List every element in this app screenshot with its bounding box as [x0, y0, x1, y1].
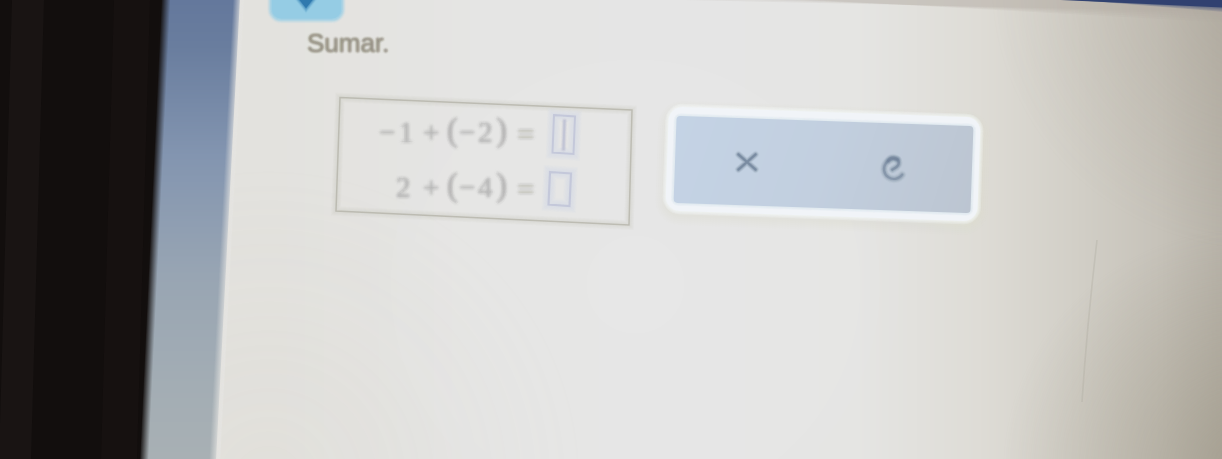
button[interactable]: Sumar, current topic [272, 0, 342, 20]
button[interactable]: Second answer box [548, 171, 572, 207]
button[interactable]: First answer box [553, 114, 577, 155]
button[interactable]: Undo [824, 120, 971, 210]
button[interactable]: Clear [677, 120, 824, 210]
